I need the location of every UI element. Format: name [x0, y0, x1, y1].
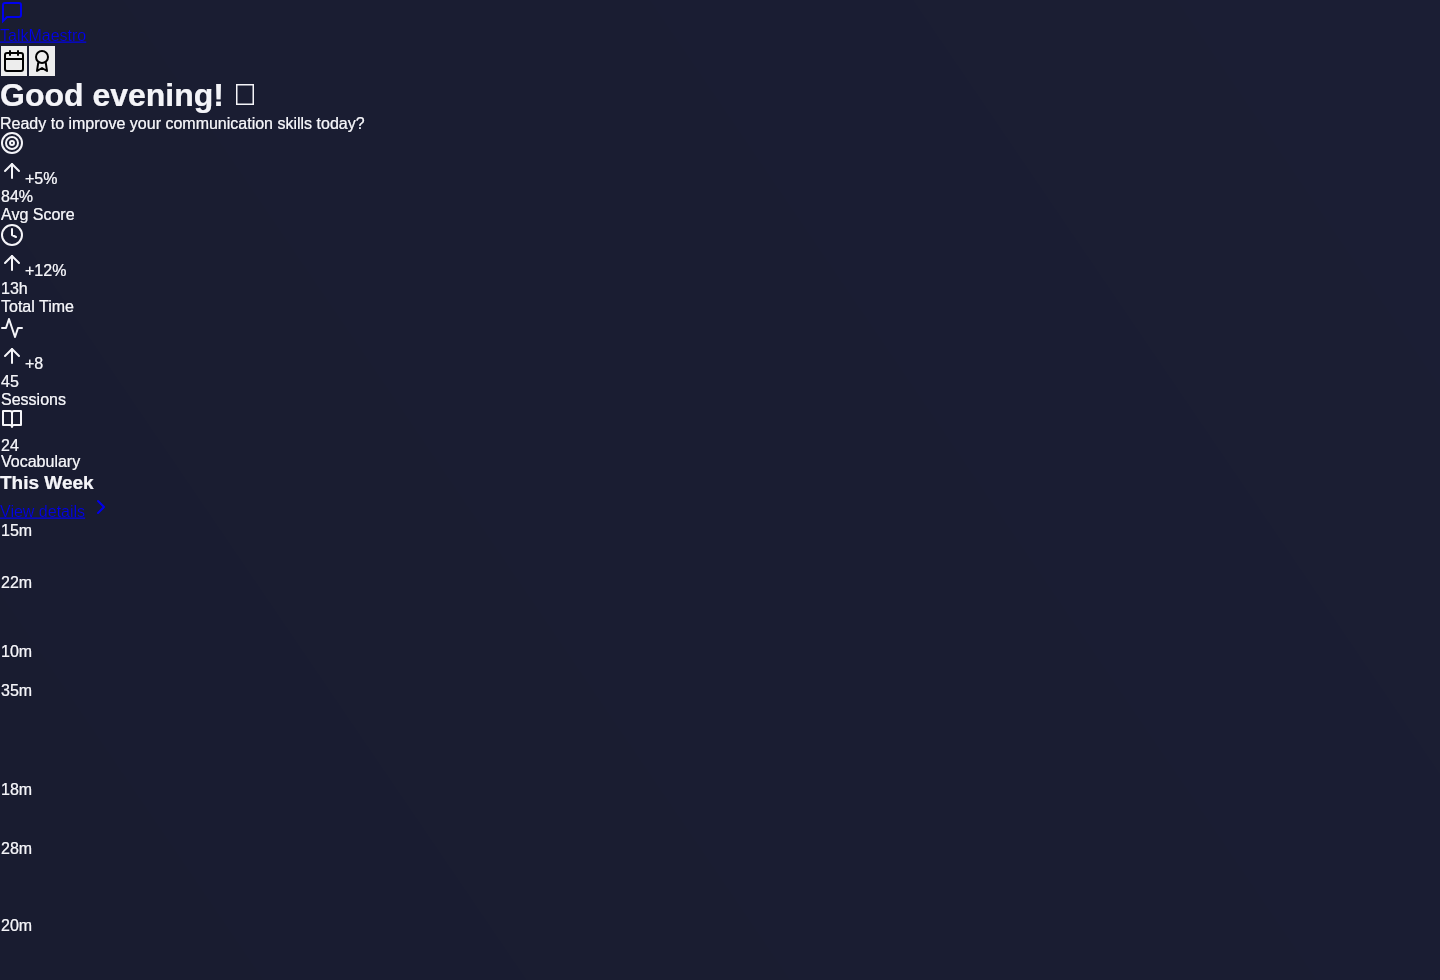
button[interactable]: +12% [0, 223, 120, 316]
staticText: 22m [1, 574, 33, 592]
staticText: Good evening! [0, 77, 224, 113]
button[interactable]: View details [0, 498, 106, 520]
staticText: This Week [0, 472, 94, 493]
button[interactable]: 18m [0, 780, 120, 839]
staticText: 24 [1, 437, 19, 455]
staticText: 10m [1, 643, 33, 661]
button[interactable]: Calendar [1, 46, 27, 76]
staticText: 35m [1, 682, 33, 700]
button[interactable]: 15m [0, 521, 120, 573]
button[interactable]: 10m [0, 642, 120, 681]
staticText: Avg Score [1, 206, 75, 224]
staticText: Vocabulary [1, 453, 81, 471]
staticText: Total Time [1, 298, 74, 316]
staticText: Ready to improve your communication skil… [0, 115, 365, 133]
button[interactable]: 35m [0, 681, 120, 780]
staticText: 84% [1, 188, 34, 206]
button[interactable]: 22m [0, 573, 120, 642]
button[interactable]: 20m [0, 916, 120, 980]
staticText: View details [0, 503, 90, 521]
staticText: +12% [25, 262, 67, 280]
staticText: Sessions [1, 391, 66, 409]
button[interactable]: +8 [0, 316, 120, 409]
button[interactable]: Achievements [29, 46, 55, 76]
staticText: 20m [1, 917, 33, 935]
staticText: 18m [1, 781, 33, 799]
staticText: +8 [25, 355, 44, 373]
staticText: 45 [1, 373, 19, 391]
staticText: +5% [25, 170, 58, 188]
staticText: 28m [1, 840, 33, 858]
button[interactable]: 28m [0, 839, 120, 916]
button[interactable]: TalkMaestro home [0, 0, 90, 45]
staticText: 15m [1, 522, 33, 540]
staticText: 13h [1, 280, 28, 298]
button[interactable]: 24 [0, 406, 120, 471]
staticText: TalkMaestro [0, 27, 87, 45]
button[interactable]: +5% [0, 131, 120, 224]
